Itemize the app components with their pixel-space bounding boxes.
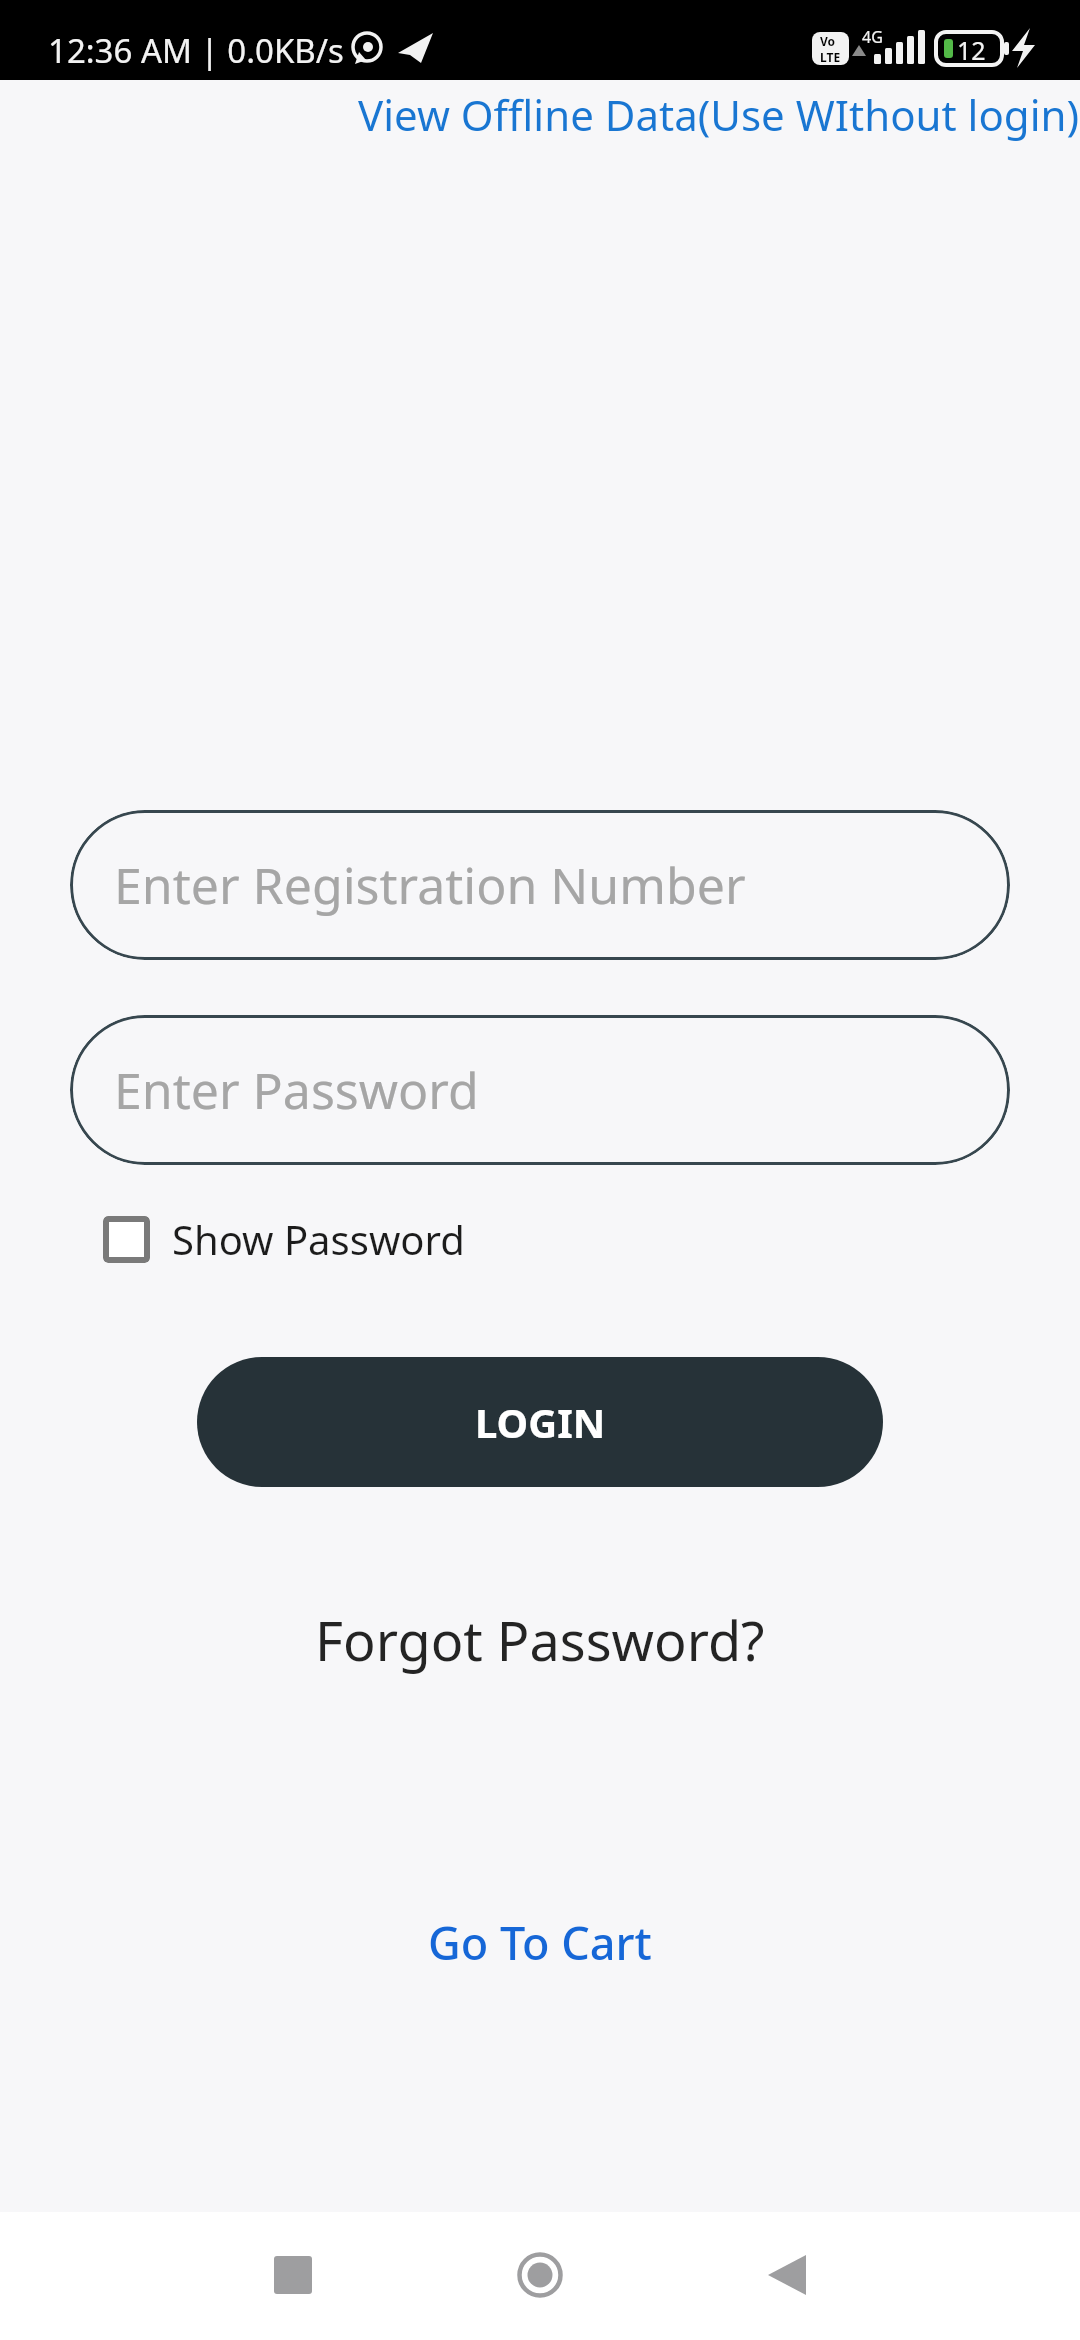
staticText: LOGIN <box>475 1395 606 1449</box>
staticText: Enter Password <box>114 1056 479 1124</box>
button[interactable]: Forgot Password? <box>315 1603 765 1677</box>
button[interactable]: LOGIN <box>197 1357 883 1487</box>
button[interactable]: Show Password <box>103 1212 465 1266</box>
staticText: 12:36 AM | 0.0KB/s <box>48 28 344 73</box>
staticText: Forgot Password? <box>315 1603 765 1677</box>
staticText: Go To Cart <box>428 1912 652 1973</box>
staticText: Vo <box>820 33 836 49</box>
staticText: LTE <box>820 49 841 65</box>
staticText: Enter Registration Number <box>114 851 746 919</box>
button[interactable]: Enter Password <box>70 1015 1010 1165</box>
staticText: Show Password <box>172 1212 465 1266</box>
button[interactable]: View Offline Data(Use WIthout login) <box>358 86 1080 143</box>
button[interactable]: Go To Cart <box>428 1912 652 1973</box>
staticText: 12 <box>957 33 986 67</box>
staticText: 4G <box>862 26 883 48</box>
staticText: View Offline Data(Use WIthout login) <box>358 86 1080 143</box>
button[interactable]: Enter Registration Number <box>70 810 1010 960</box>
